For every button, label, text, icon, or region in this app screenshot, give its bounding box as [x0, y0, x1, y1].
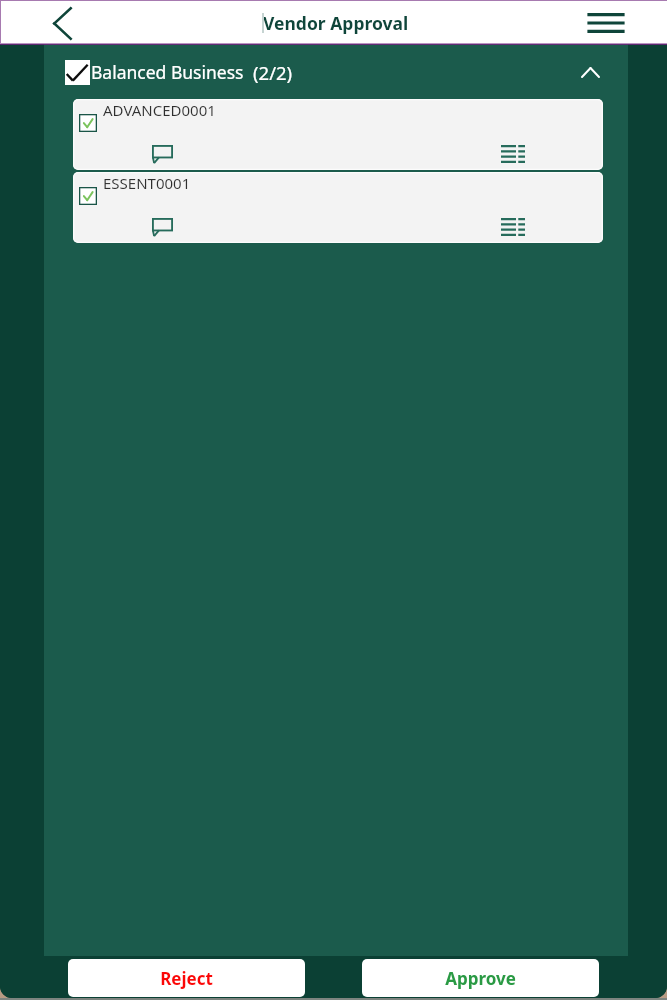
button[interactable]: Back: [40, 1, 84, 45]
button[interactable]: Reject: [68, 959, 305, 997]
staticText: ADVANCED0001: [103, 100, 216, 120]
staticText: ESSENT0001: [103, 173, 191, 193]
button[interactable]: Comment: [141, 140, 171, 168]
staticText: Vendor Approval: [263, 11, 409, 35]
button[interactable]: ESSENT0001: [73, 172, 603, 243]
button[interactable]: Balanced Business: [44, 45, 628, 99]
button[interactable]: Menu: [582, 1, 630, 45]
button[interactable]: Details: [491, 212, 525, 240]
staticText: Reject: [160, 967, 213, 990]
button[interactable]: Approve: [362, 959, 599, 997]
button[interactable]: ADVANCED0001: [73, 99, 603, 170]
button[interactable]: Details: [491, 139, 525, 167]
staticText: (2/2): [253, 60, 293, 85]
button[interactable]: Comment: [141, 213, 171, 241]
staticText: Approve: [445, 967, 516, 990]
staticText: Balanced Business: [91, 60, 244, 84]
